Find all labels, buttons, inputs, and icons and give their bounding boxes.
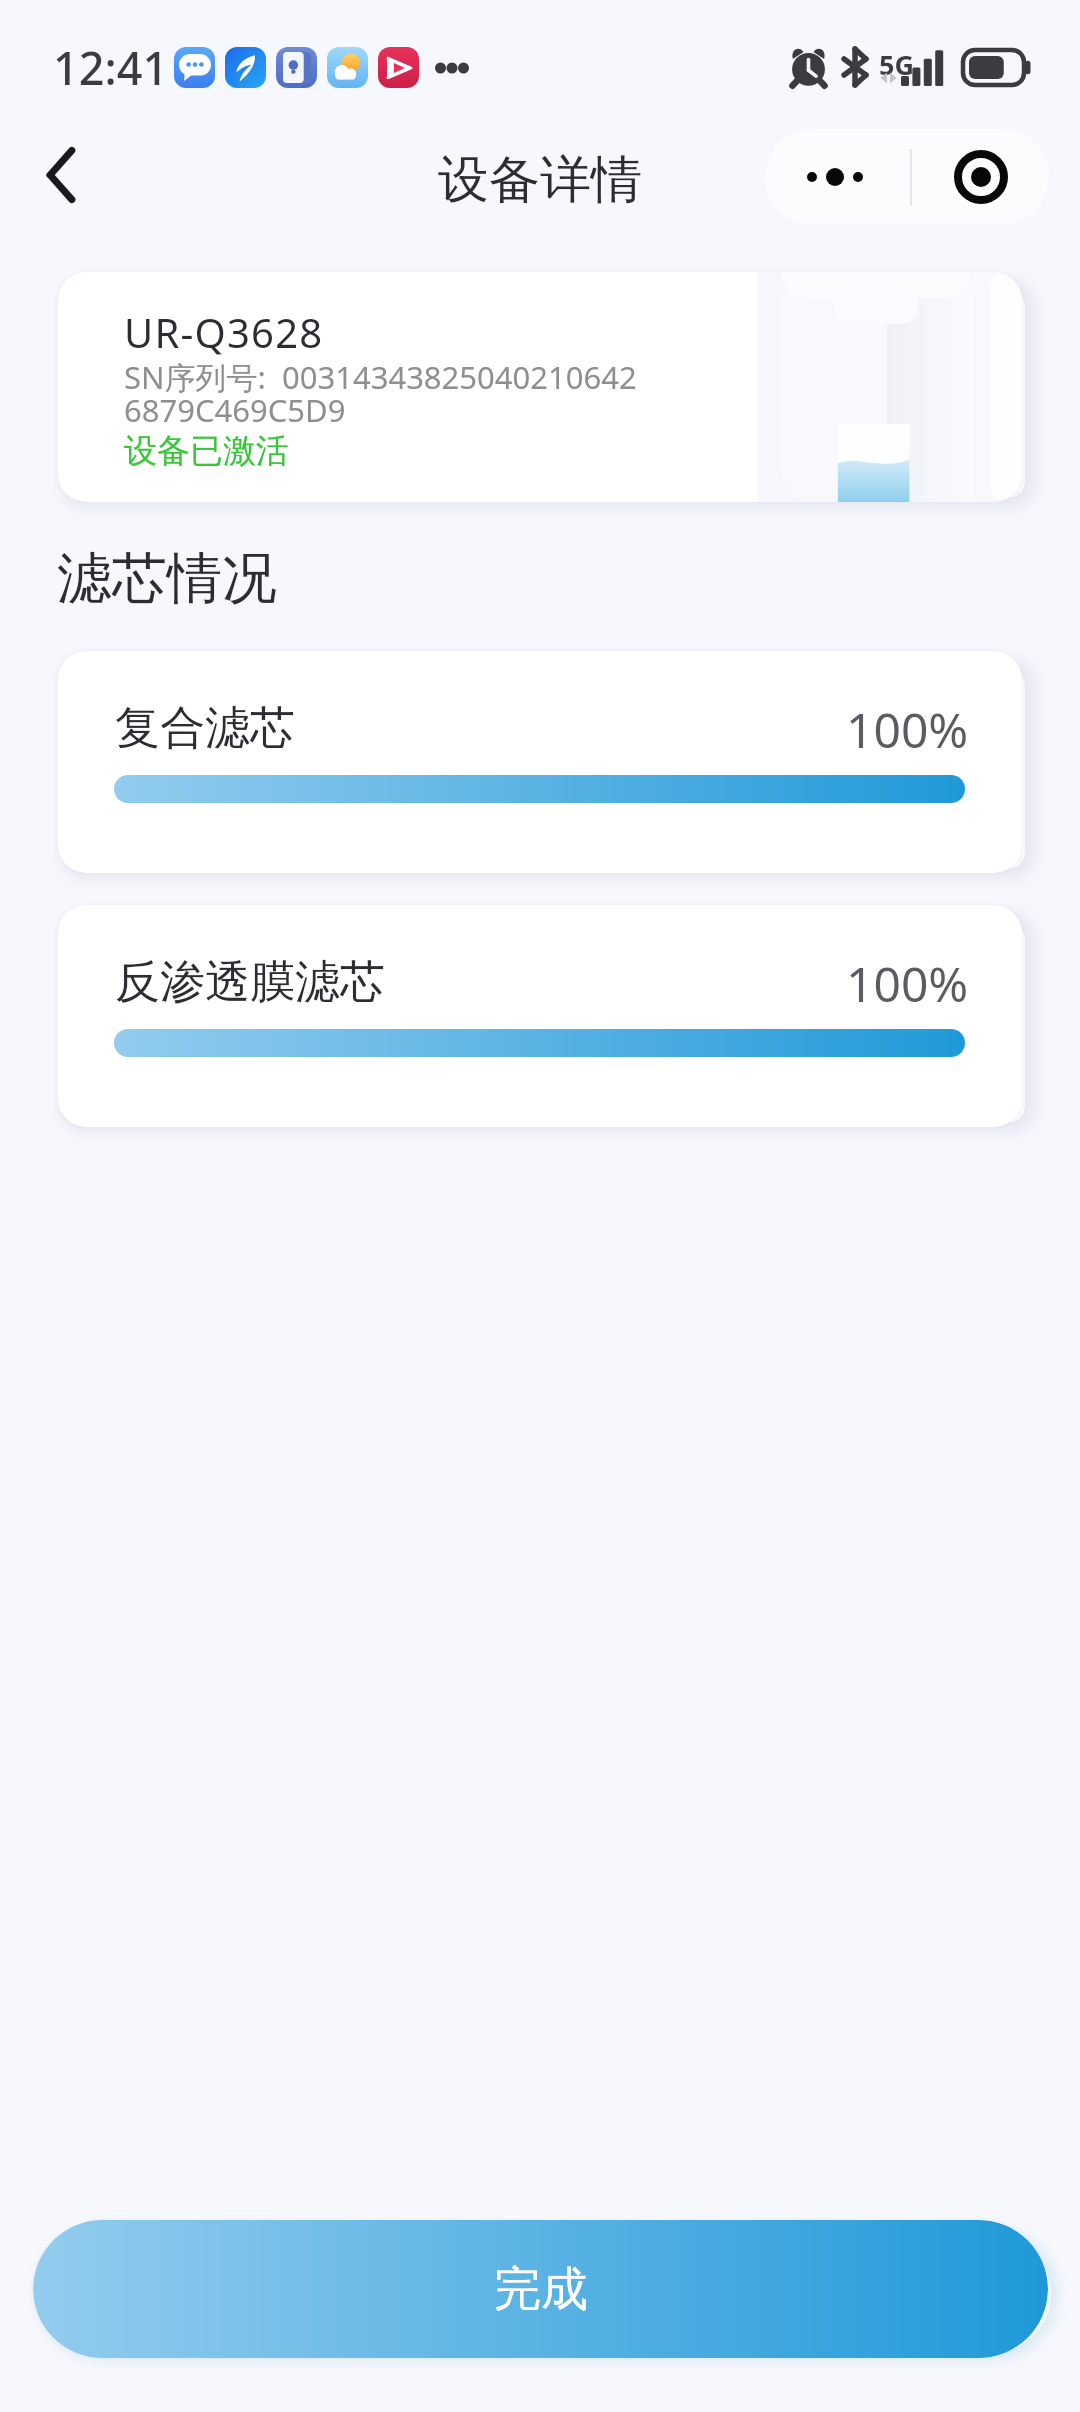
button[interactable]: 反渗透膜滤芯 <box>58 905 1022 1127</box>
staticText: 设备已激活 <box>124 430 289 472</box>
staticText: 滤芯情况 <box>57 544 277 613</box>
staticText: 6879C469C5D9 <box>124 389 346 431</box>
staticText: 完成 <box>494 2260 588 2319</box>
staticText: 反渗透膜滤芯 <box>115 954 385 1011</box>
staticText: 100% <box>846 951 969 1016</box>
button[interactable]: Close mini program <box>912 129 1049 225</box>
staticText: 设备详情 <box>438 148 642 212</box>
staticText: 5G <box>879 46 914 83</box>
staticText: 12:41 <box>53 37 169 98</box>
staticText: SN序列号: 00314343825040210642 <box>124 356 637 398</box>
button[interactable]: 复合滤芯 <box>58 651 1022 873</box>
button[interactable]: 完成 <box>33 2220 1048 2358</box>
button[interactable]: UR-Q3628 <box>58 272 1022 502</box>
staticText: 复合滤芯 <box>115 700 295 757</box>
button[interactable]: More <box>765 129 910 225</box>
staticText: UR-Q3628 <box>124 305 324 359</box>
button[interactable]: Back <box>16 130 106 220</box>
staticText: 100% <box>846 697 969 762</box>
